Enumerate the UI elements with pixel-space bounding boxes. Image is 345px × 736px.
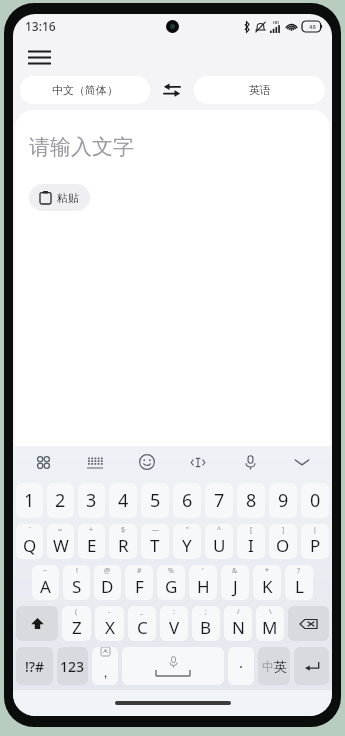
- button[interactable]: Backspace: [288, 606, 329, 641]
- button[interactable]: Shift: [16, 606, 58, 641]
- staticText: 英: [274, 658, 287, 674]
- button[interactable]: /: [224, 606, 252, 641]
- staticText: :: [173, 607, 175, 617]
- button[interactable]: *: [253, 565, 281, 600]
- staticText: —: [152, 525, 159, 535]
- button[interactable]: $: [109, 524, 137, 559]
- staticText: @: [104, 566, 111, 576]
- button[interactable]: 4: [109, 483, 137, 518]
- staticText: $: [121, 525, 126, 535]
- staticText: F: [135, 575, 144, 598]
- staticText: \: [269, 607, 272, 617]
- button[interactable]: ;: [192, 606, 220, 641]
- button[interactable]: @: [94, 565, 121, 600]
- button[interactable]: `: [16, 524, 43, 559]
- button[interactable]: +: [78, 524, 105, 559]
- staticText: !: [76, 566, 78, 576]
- staticText: HD: [273, 20, 279, 25]
- button[interactable]: Keyboard layout: [79, 446, 111, 478]
- staticText: P: [310, 534, 321, 557]
- staticText: J: [233, 575, 238, 598]
- staticText: ·: [239, 656, 244, 676]
- staticText: A: [40, 575, 51, 598]
- staticText: `: [29, 525, 31, 535]
- button[interactable]: 5: [141, 483, 169, 518]
- button[interactable]: ': [189, 565, 217, 600]
- button[interactable]: Space: [122, 647, 224, 685]
- button[interactable]: (: [62, 606, 91, 641]
- button[interactable]: 1: [16, 483, 43, 518]
- button[interactable]: 2: [47, 483, 74, 518]
- staticText: S: [72, 575, 82, 598]
- button[interactable]: Text edit: [182, 446, 214, 478]
- staticText: 7: [214, 488, 225, 513]
- staticText: Q: [23, 534, 37, 557]
- button[interactable]: !?#: [16, 647, 53, 685]
- staticText: 13:16: [25, 18, 56, 34]
- staticText: ": [186, 525, 189, 535]
- staticText: 48: [309, 23, 316, 31]
- button[interactable]: :: [160, 606, 188, 641]
- button[interactable]: %: [157, 565, 185, 600]
- staticText: W: [53, 534, 69, 557]
- button[interactable]: Switch Chinese English: [258, 647, 290, 685]
- staticText: O: [276, 534, 290, 557]
- button[interactable]: 粘贴: [29, 184, 90, 211]
- button[interactable]: 9: [269, 483, 297, 518]
- button[interactable]: #: [125, 565, 153, 600]
- button[interactable]: &: [221, 565, 249, 600]
- button[interactable]: —: [141, 524, 169, 559]
- button[interactable]: !: [63, 565, 90, 600]
- staticText: 9: [278, 488, 289, 513]
- button[interactable]: Menu: [19, 38, 59, 76]
- button[interactable]: ": [173, 524, 201, 559]
- button[interactable]: _: [128, 606, 156, 641]
- button[interactable]: 6: [173, 483, 201, 518]
- button[interactable]: Comma and settings: [92, 647, 118, 685]
- staticText: V: [169, 616, 180, 639]
- staticText: D: [101, 575, 114, 598]
- staticText: =: [58, 525, 63, 535]
- staticText: 粘贴: [57, 191, 79, 205]
- button[interactable]: |: [301, 524, 329, 559]
- staticText: %: [168, 566, 174, 576]
- staticText: B: [200, 616, 212, 639]
- button[interactable]: 0: [301, 483, 329, 518]
- button[interactable]: Voice input: [234, 446, 266, 478]
- staticText: C: [137, 616, 148, 639]
- staticText: H: [197, 575, 210, 598]
- button[interactable]: ·: [228, 647, 254, 685]
- staticText: [: [250, 525, 253, 535]
- staticText: (: [75, 607, 78, 617]
- button[interactable]: Enter: [294, 647, 329, 685]
- staticText: K: [262, 575, 273, 598]
- button[interactable]: [: [237, 524, 265, 559]
- button[interactable]: 123: [57, 647, 88, 685]
- button[interactable]: =: [47, 524, 74, 559]
- button[interactable]: ?: [285, 565, 313, 600]
- button[interactable]: \: [256, 606, 284, 641]
- button[interactable]: Swap languages: [150, 76, 194, 104]
- button[interactable]: 8: [237, 483, 265, 518]
- button[interactable]: 7: [205, 483, 233, 518]
- button[interactable]: ~: [32, 565, 59, 600]
- button[interactable]: ^: [205, 524, 233, 559]
- staticText: ': [202, 566, 204, 576]
- button[interactable]: ]: [269, 524, 297, 559]
- button[interactable]: Hide keyboard: [286, 446, 318, 478]
- button[interactable]: 3: [78, 483, 105, 518]
- button[interactable]: 中文（简体）: [20, 76, 150, 104]
- staticText: #: [137, 566, 142, 576]
- button[interactable]: Emoji: [131, 446, 163, 478]
- staticText: 4: [118, 488, 129, 513]
- staticText: 中: [262, 659, 274, 674]
- staticText: 1: [24, 488, 35, 513]
- staticText: +: [89, 525, 94, 535]
- button[interactable]: 英语: [194, 76, 325, 104]
- staticText: X: [105, 616, 115, 639]
- staticText: ]: [282, 525, 285, 535]
- staticText: 123: [60, 657, 85, 676]
- button[interactable]: -: [95, 606, 124, 641]
- staticText: ，: [99, 664, 112, 680]
- button[interactable]: Apps: [27, 446, 59, 478]
